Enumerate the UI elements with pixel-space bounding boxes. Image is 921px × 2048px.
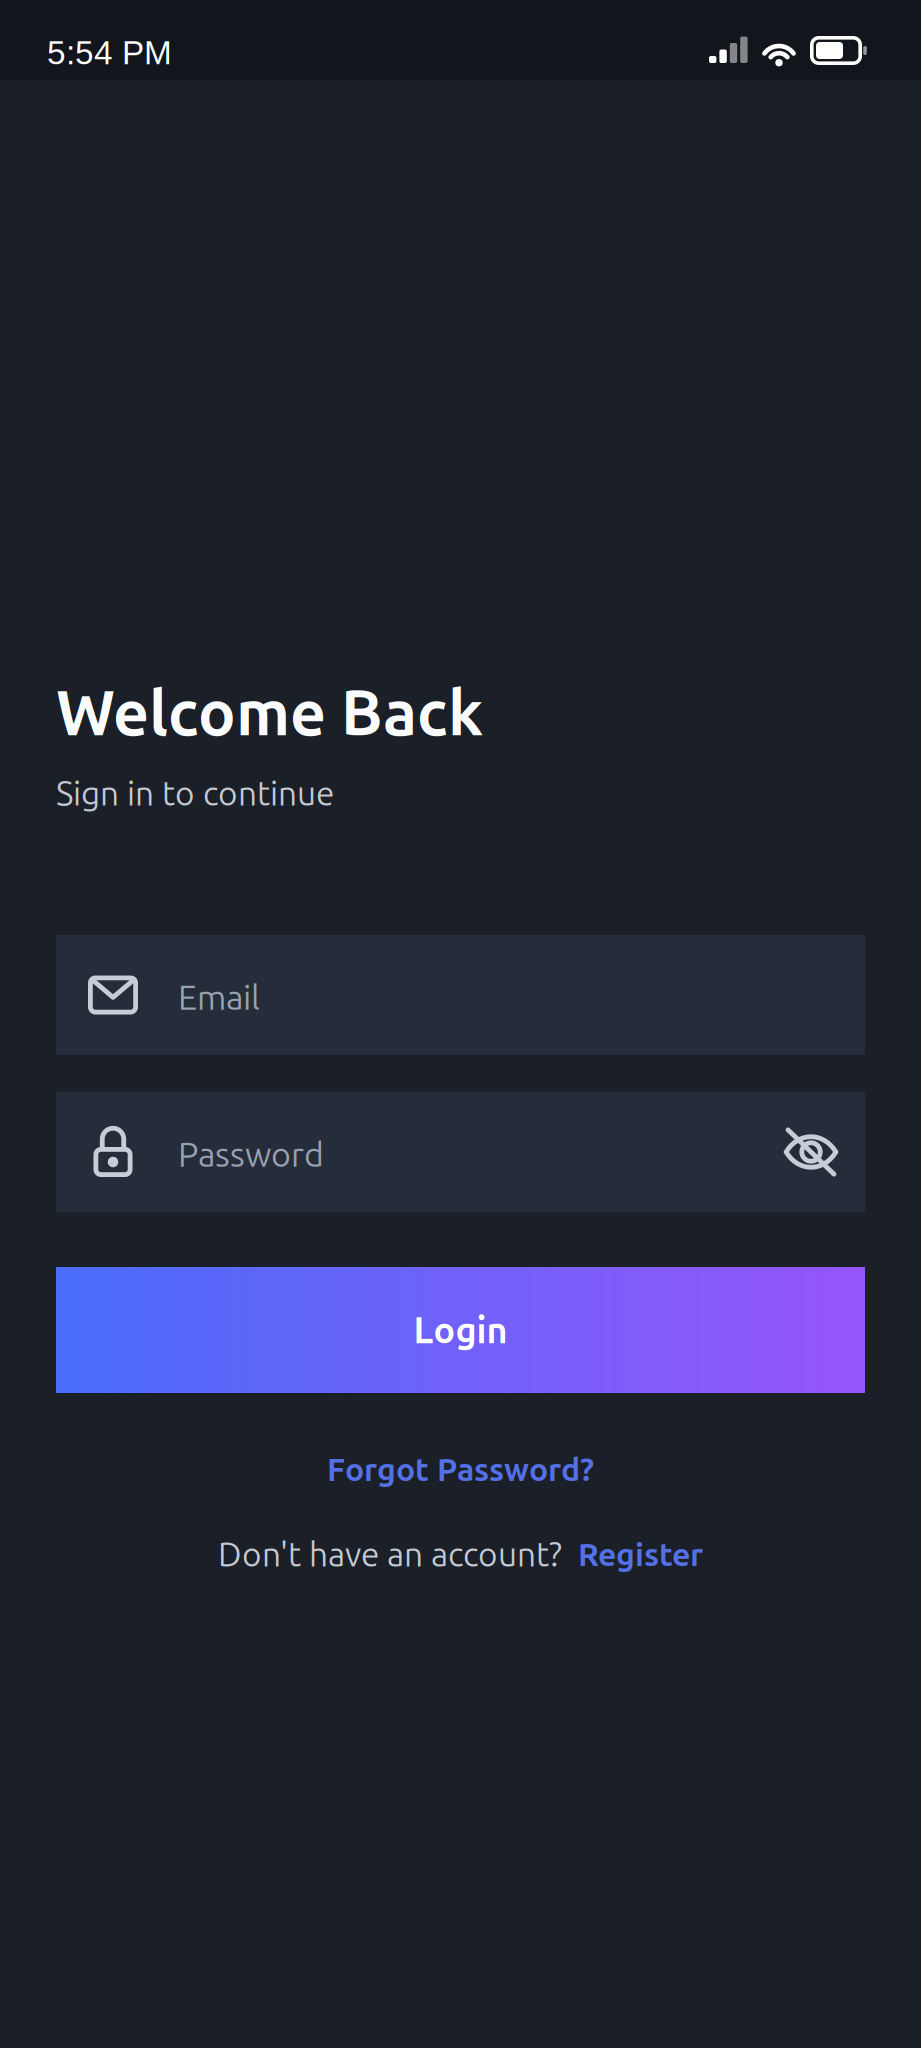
staticText: Register bbox=[578, 1536, 703, 1572]
staticText: Email bbox=[178, 978, 260, 1016]
button[interactable]: Register bbox=[562, 1536, 703, 1572]
staticText: Welcome Back bbox=[56, 677, 483, 747]
button[interactable]: Login bbox=[56, 1267, 865, 1393]
staticText: Forgot Password? bbox=[327, 1451, 594, 1487]
staticText: Password bbox=[178, 1135, 324, 1173]
staticText: 5:54 PM bbox=[47, 34, 172, 71]
staticText: Sign in to continue bbox=[56, 774, 334, 812]
button[interactable]: Show password bbox=[783, 1124, 865, 1180]
staticText: Login bbox=[413, 1310, 507, 1350]
button[interactable]: Forgot Password? bbox=[56, 1447, 865, 1491]
staticText: Don't have an account? bbox=[218, 1535, 562, 1573]
